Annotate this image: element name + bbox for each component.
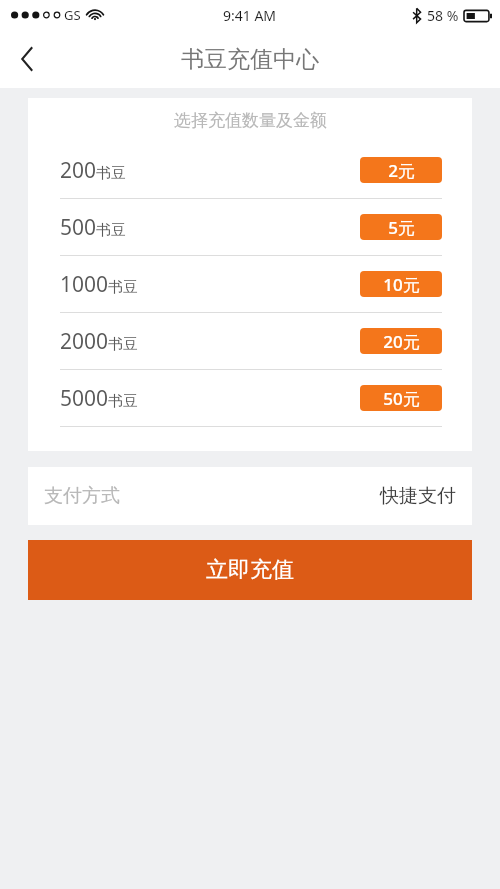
button[interactable]: 支付方式	[28, 467, 472, 525]
staticText: 立即充值	[206, 556, 294, 584]
staticText: 9:41 AM	[223, 6, 277, 25]
button[interactable]: 1000书豆	[28, 256, 472, 313]
staticText: 书豆充值中心	[181, 45, 319, 74]
staticText: 200书豆	[60, 156, 127, 185]
staticText: GS	[64, 6, 81, 24]
staticText: 58 %	[427, 6, 459, 25]
staticText: 10元	[383, 273, 420, 296]
staticText: 500书豆	[60, 213, 127, 242]
staticText: 50元	[383, 387, 420, 410]
button[interactable]: Back	[0, 32, 54, 86]
staticText: 20元	[383, 330, 420, 353]
button[interactable]: 500书豆	[28, 199, 472, 256]
button[interactable]: 5000书豆	[28, 370, 472, 427]
staticText: 快捷支付	[380, 484, 456, 508]
staticText: 5000书豆	[60, 384, 139, 413]
button[interactable]: 200书豆	[28, 142, 472, 199]
button[interactable]: 立即充值	[28, 540, 472, 600]
staticText: 5元	[388, 216, 415, 239]
staticText: 2000书豆	[60, 327, 139, 356]
staticText: 1000书豆	[60, 270, 139, 299]
staticText: 支付方式	[44, 484, 120, 508]
staticText: 选择充值数量及金额	[174, 110, 327, 131]
staticText: 2元	[388, 159, 415, 182]
button[interactable]: 2000书豆	[28, 313, 472, 370]
